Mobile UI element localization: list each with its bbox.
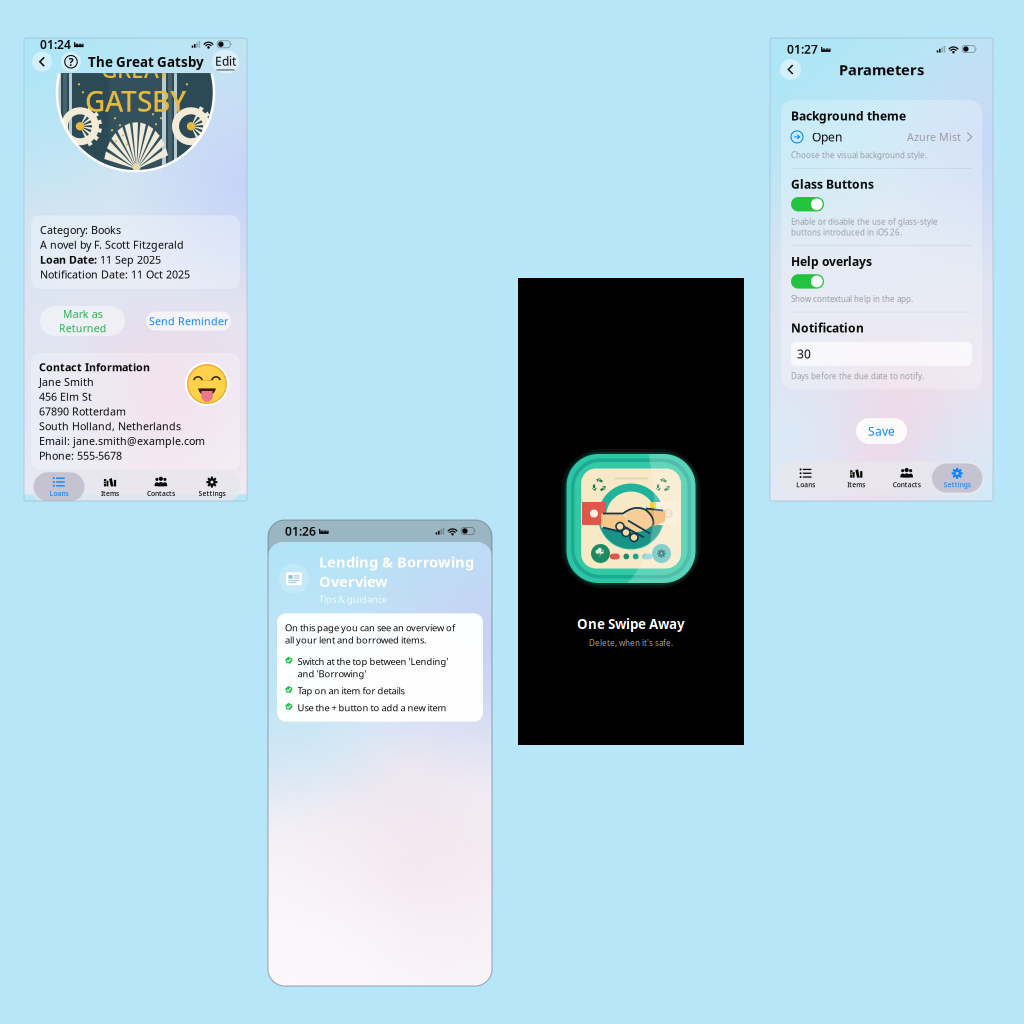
staticText: Category: Books	[40, 223, 121, 237]
staticText: Background theme	[791, 108, 906, 124]
staticText: Overview	[319, 571, 388, 591]
button[interactable]: Back	[780, 59, 801, 80]
staticText: Edit	[215, 53, 236, 69]
staticText: Choose the visual background style.	[791, 150, 927, 160]
staticText: Contacts	[147, 489, 175, 498]
staticText: Azure Mist	[907, 130, 961, 144]
button[interactable]: Items	[831, 463, 881, 492]
staticText: 11 Sep 2025	[100, 252, 161, 267]
button[interactable]: Open	[791, 129, 972, 145]
button[interactable]: Items	[84, 472, 135, 501]
staticText: 01:24	[40, 36, 71, 52]
staticText: Settings	[944, 480, 971, 489]
staticText: Delete, when it's safe.	[589, 638, 673, 648]
staticText: Phone: 555-5678	[39, 449, 122, 463]
staticText: The Great Gatsby	[88, 53, 204, 71]
staticText: Notification Date: 11 Oct 2025	[40, 267, 190, 282]
staticText: Tips & guidance	[319, 593, 387, 605]
staticText: Contacts	[893, 480, 921, 489]
staticText: Days before the due date to notify.	[791, 371, 924, 381]
button[interactable]: Send Reminder	[146, 311, 231, 330]
button[interactable]: Contacts	[881, 463, 932, 492]
button[interactable]: Loans	[780, 463, 831, 492]
staticText: Settings	[198, 489, 225, 498]
button[interactable]: Settings	[932, 463, 982, 492]
staticText: Glass Buttons	[791, 176, 874, 192]
button[interactable]: Mark as Returned	[40, 306, 125, 336]
staticText: Enable or disable the use of glass-style…	[791, 216, 938, 238]
button[interactable]: Help	[61, 52, 81, 72]
staticText: On this page you can see an overview of …	[285, 621, 455, 646]
staticText: Notification	[791, 320, 864, 336]
button[interactable]: Loans	[33, 472, 84, 501]
staticText: Help overlays	[791, 253, 872, 269]
button[interactable]: Back	[32, 52, 52, 72]
staticText: Parameters	[839, 60, 924, 79]
staticText: Email: jane.smith@example.com	[39, 434, 205, 448]
staticText: Lending & Borrowing	[319, 552, 474, 571]
staticText: 01:27	[787, 41, 818, 57]
staticText: Loan Date:	[40, 252, 100, 267]
staticText: One Swipe Away	[577, 615, 685, 633]
staticText: South Holland, Netherlands	[39, 419, 181, 433]
staticText: Items	[847, 480, 865, 489]
staticText: Loans	[49, 489, 68, 498]
staticText: Items	[101, 489, 119, 498]
staticText: Save	[868, 423, 895, 439]
staticText: ?	[68, 55, 73, 69]
staticText: Mark as Returned	[58, 307, 106, 335]
staticText: Loans	[796, 480, 815, 489]
staticText: Send Reminder	[149, 314, 228, 328]
staticText: Contact Information	[39, 360, 150, 374]
button[interactable]: Save	[856, 418, 907, 444]
staticText: Open	[812, 129, 842, 145]
staticText: Use the + button to add a new item	[298, 701, 447, 714]
staticText: Switch at the top between 'Lending' and …	[298, 655, 449, 680]
staticText: Show contextual help in the app.	[791, 294, 913, 304]
button[interactable]: Edit	[212, 50, 239, 73]
staticText: 01:26	[285, 523, 316, 539]
staticText: 456 Elm St	[39, 390, 92, 404]
staticText: Tap on an item for details	[298, 684, 405, 697]
staticText: GREAT	[101, 54, 170, 84]
staticText: 67890 Rotterdam	[39, 404, 126, 418]
staticText: A novel by F. Scott Fitzgerald	[40, 238, 184, 252]
staticText: 30	[797, 346, 811, 362]
button[interactable]: Settings	[186, 472, 237, 501]
staticText: GATSBY	[85, 82, 186, 120]
button[interactable]: Contacts	[135, 472, 186, 501]
staticText: Jane Smith	[39, 375, 94, 389]
